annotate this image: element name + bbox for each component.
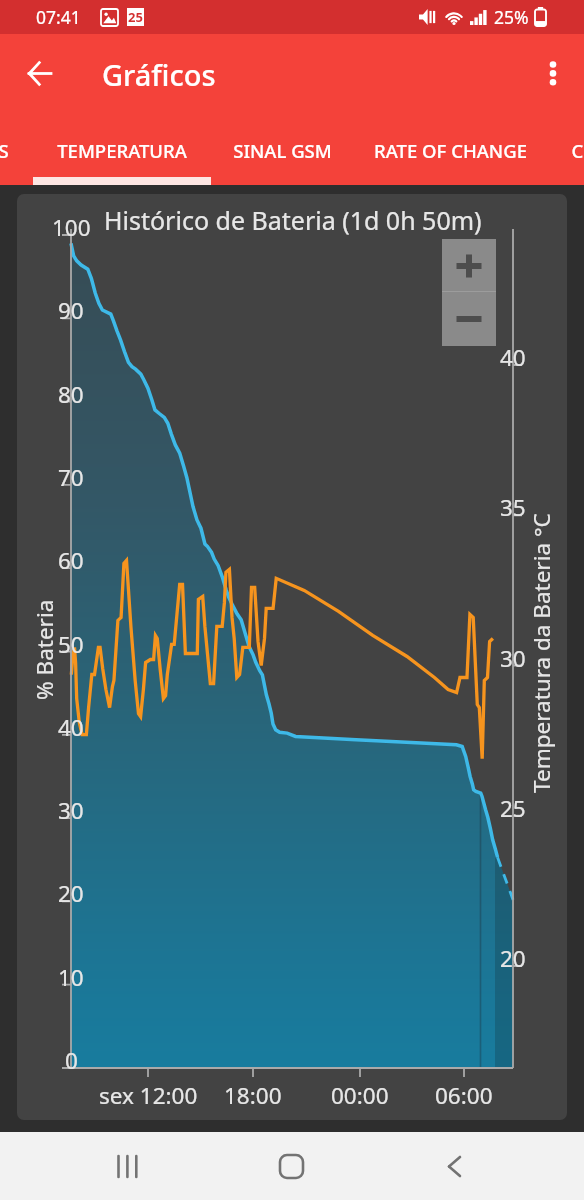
staticText: 20 [58, 878, 84, 909]
staticText: 100 [52, 212, 91, 243]
button[interactable]: SINAL GSM [211, 114, 353, 185]
staticText: 30 [58, 795, 84, 826]
staticText: CHARGE [571, 138, 584, 163]
button[interactable]: Back [15, 48, 65, 98]
staticText: 30 [500, 643, 526, 674]
staticText: % Bateria [29, 599, 60, 700]
staticText: 40 [500, 342, 526, 373]
button[interactable]: RATE OF CHANGE [353, 114, 548, 185]
staticText: 25 [500, 793, 526, 824]
button[interactable]: Home [256, 1132, 326, 1200]
button[interactable]: TEMPERATURA [33, 114, 211, 185]
staticText: 25 [128, 8, 143, 26]
staticText: 18:00 [224, 1080, 282, 1111]
button[interactable]: Zoom out [442, 292, 496, 346]
staticText: 40 [58, 712, 84, 743]
button[interactable]: Recent apps [92, 1132, 162, 1200]
staticText: 90 [58, 295, 84, 326]
staticText: Gráficos [102, 55, 216, 94]
staticText: 60 [58, 545, 84, 576]
button[interactable]: Back [419, 1132, 489, 1200]
button[interactable]: TENSOES [0, 114, 28, 185]
staticText: TEMPERATURA [57, 138, 187, 163]
staticText: 25% [494, 5, 529, 29]
staticText: Temperatura da Bateria °C [526, 513, 557, 793]
staticText: 35 [500, 492, 526, 523]
staticText: RATE OF CHANGE [374, 138, 527, 163]
staticText: sex 12:00 [99, 1080, 198, 1111]
staticText: SINAL GSM [233, 138, 332, 163]
staticText: 10 [58, 962, 84, 993]
staticText: 06:00 [435, 1080, 493, 1111]
button[interactable]: Zoom in [442, 239, 496, 292]
staticText: 20 [500, 943, 526, 974]
staticText: 00:00 [331, 1080, 389, 1111]
staticText: 70 [58, 462, 84, 493]
staticText: 50 [58, 629, 84, 660]
button[interactable]: More options [528, 48, 578, 98]
staticText: TENSOES [0, 138, 9, 163]
staticText: 80 [58, 379, 84, 410]
staticText: Histórico de Bateria (1d 0h 50m) [104, 203, 482, 237]
staticText: 0 [65, 1045, 78, 1076]
button[interactable]: CHARGE [548, 114, 584, 185]
staticText: 07:41 [36, 5, 81, 29]
